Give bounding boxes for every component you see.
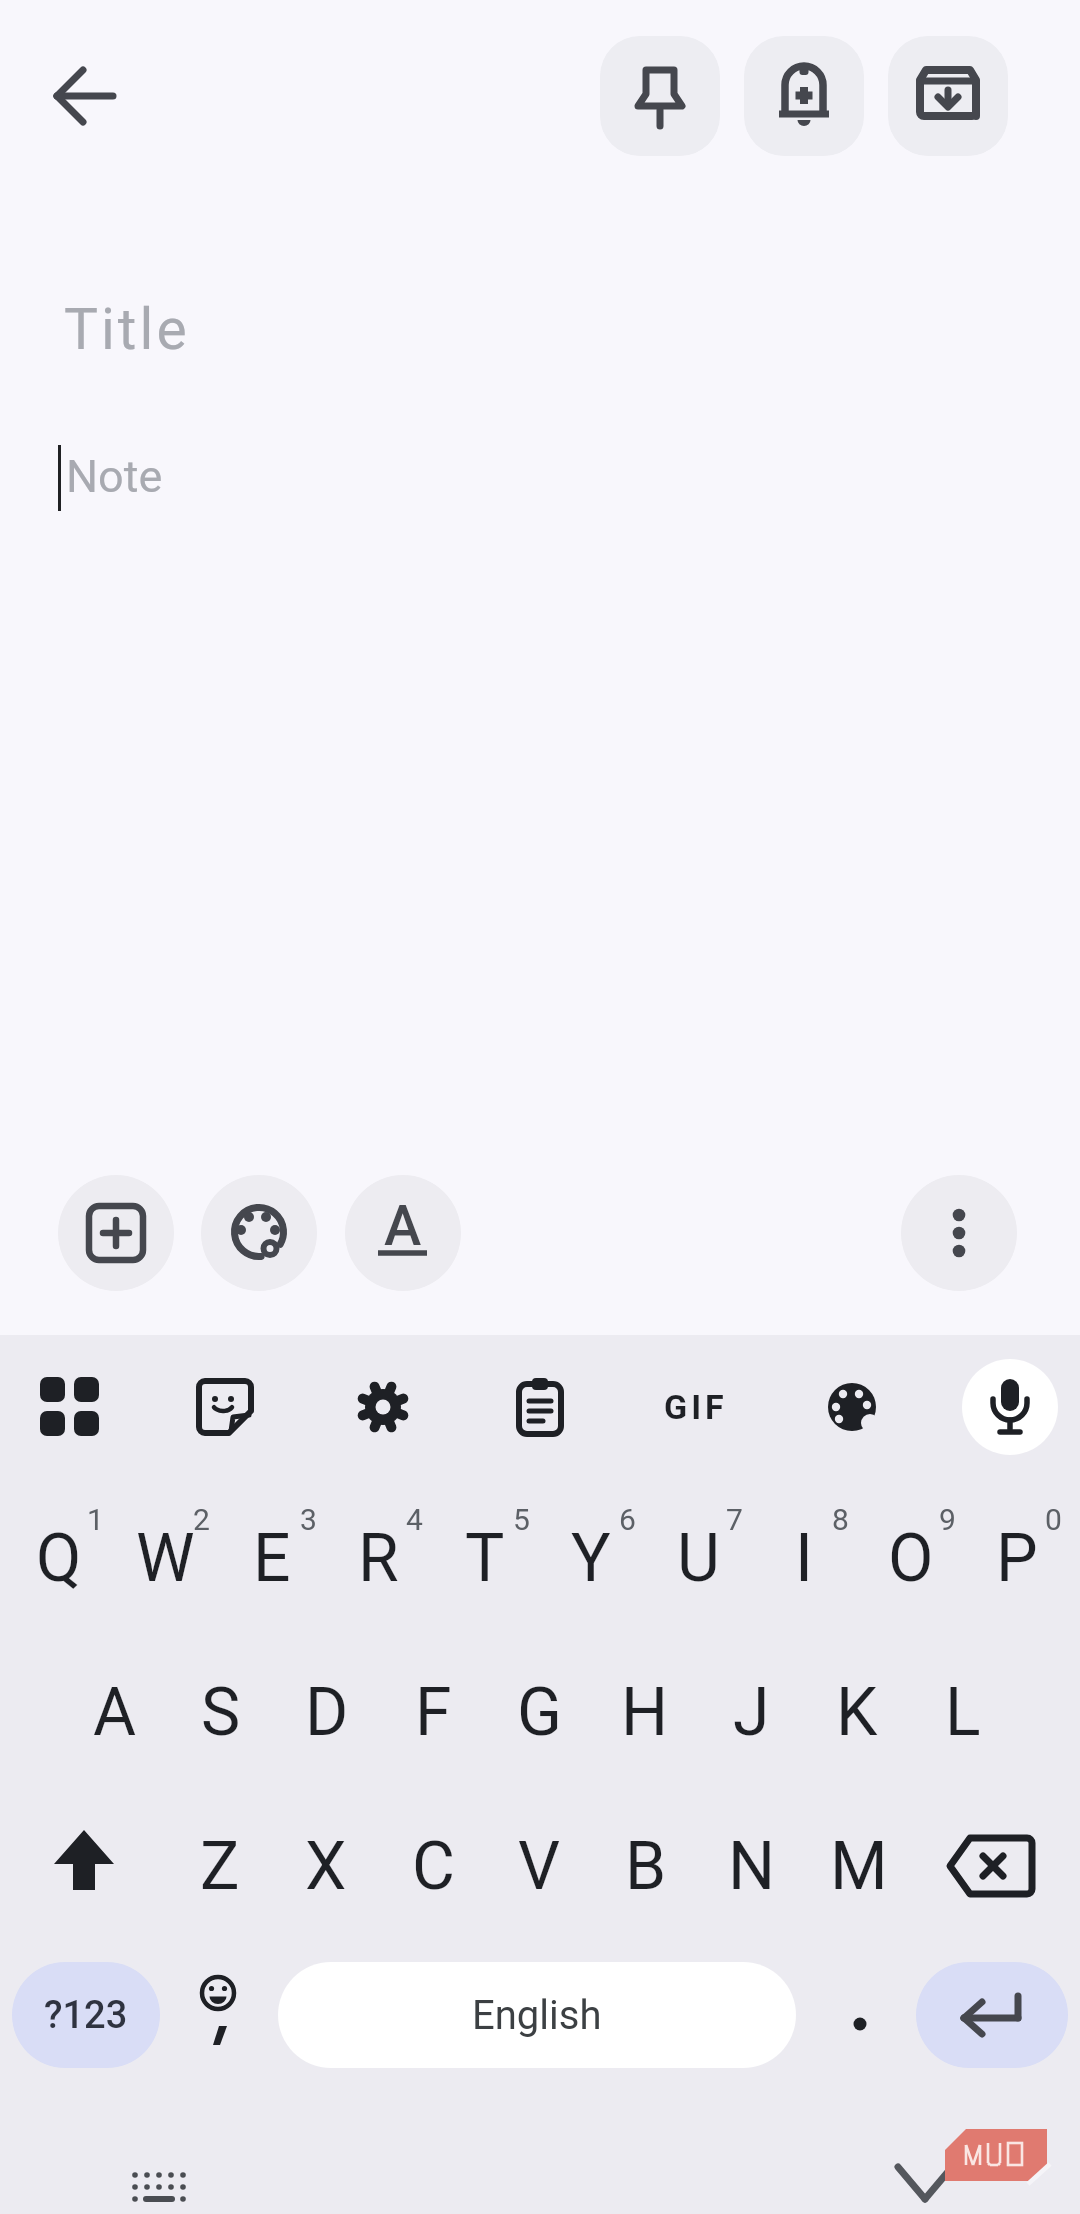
button[interactable] <box>177 1359 273 1455</box>
staticText: U <box>677 1520 720 1597</box>
staticText: J <box>733 1674 770 1751</box>
button[interactable] <box>22 1359 118 1455</box>
button[interactable]: F <box>379 1642 487 1782</box>
button[interactable] <box>37 48 133 144</box>
button[interactable] <box>916 1962 1068 2068</box>
staticText: T <box>465 1520 505 1597</box>
staticText: N <box>728 1828 776 1905</box>
staticText: 1 <box>87 1502 104 1537</box>
button[interactable]: K <box>803 1642 911 1782</box>
staticText: 9 <box>939 1502 956 1537</box>
button[interactable]: N <box>698 1796 806 1936</box>
button[interactable] <box>888 36 1008 156</box>
button[interactable] <box>600 36 720 156</box>
button[interactable]: A <box>345 1175 461 1291</box>
staticText: 8 <box>832 1502 849 1537</box>
staticText: 2 <box>193 1502 210 1537</box>
staticText: K <box>836 1674 878 1751</box>
staticText: H <box>621 1674 669 1751</box>
button[interactable]: A <box>61 1642 169 1782</box>
staticText: D <box>305 1674 349 1751</box>
button[interactable] <box>201 1175 317 1291</box>
staticText: L <box>945 1674 981 1751</box>
button[interactable]: GIF <box>648 1359 744 1455</box>
staticText: B <box>625 1828 667 1905</box>
button[interactable] <box>962 1359 1058 1455</box>
staticText: GIF <box>664 1387 728 1427</box>
button[interactable]: X <box>272 1796 380 1936</box>
staticText: 7 <box>726 1502 743 1537</box>
button[interactable]: E <box>218 1488 326 1628</box>
staticText: English <box>472 1992 602 2039</box>
button[interactable] <box>825 1962 895 2068</box>
button[interactable]: U <box>644 1488 752 1628</box>
staticText: Note <box>66 450 163 503</box>
button[interactable] <box>335 1359 431 1455</box>
button[interactable] <box>804 1359 900 1455</box>
button[interactable] <box>492 1359 588 1455</box>
staticText: Title <box>64 296 190 363</box>
button[interactable] <box>901 1175 1017 1291</box>
button[interactable]: R <box>324 1488 432 1628</box>
staticText: S <box>201 1674 241 1751</box>
button[interactable]: Y <box>537 1488 645 1628</box>
staticText: I <box>795 1520 813 1597</box>
button[interactable] <box>744 36 864 156</box>
staticText: C <box>412 1828 455 1905</box>
button[interactable] <box>173 1962 263 2068</box>
button[interactable]: ?123 <box>12 1962 160 2068</box>
button[interactable]: G <box>485 1642 593 1782</box>
button[interactable]: L <box>909 1642 1017 1782</box>
staticText: W <box>136 1520 195 1597</box>
staticText: Q <box>36 1520 82 1597</box>
button[interactable]: S <box>167 1642 275 1782</box>
button[interactable]: P <box>963 1488 1071 1628</box>
button[interactable]: M <box>805 1796 913 1936</box>
button[interactable] <box>930 1812 1050 1920</box>
staticText: V <box>518 1828 561 1905</box>
button[interactable]: V <box>485 1796 593 1936</box>
staticText: X <box>305 1828 347 1905</box>
staticText: A <box>384 1193 422 1257</box>
staticText: E <box>253 1520 291 1597</box>
staticText: 6 <box>619 1502 636 1537</box>
staticText: A <box>93 1674 137 1751</box>
staticText: 4 <box>406 1502 423 1537</box>
button[interactable]: W <box>111 1488 219 1628</box>
button[interactable]: C <box>379 1796 487 1936</box>
button[interactable] <box>30 1812 138 1920</box>
staticText: P <box>996 1520 1038 1597</box>
staticText: 3 <box>300 1502 317 1537</box>
button[interactable]: J <box>697 1642 805 1782</box>
staticText: Z <box>200 1828 240 1905</box>
button[interactable]: D <box>273 1642 381 1782</box>
staticText: 0 <box>1045 1502 1062 1537</box>
button[interactable]: English <box>278 1962 796 2068</box>
staticText: M <box>830 1828 888 1905</box>
staticText: 5 <box>513 1502 530 1537</box>
staticText: R <box>358 1520 399 1597</box>
staticText: ?123 <box>44 1993 128 2038</box>
staticText: G <box>517 1674 562 1751</box>
button[interactable]: T <box>431 1488 539 1628</box>
staticText: O <box>888 1520 934 1597</box>
button[interactable]: Q <box>5 1488 113 1628</box>
button[interactable]: H <box>591 1642 699 1782</box>
button[interactable]: B <box>592 1796 700 1936</box>
button[interactable]: I <box>750 1488 858 1628</box>
staticText: Y <box>571 1520 611 1597</box>
button[interactable]: Z <box>166 1796 274 1936</box>
staticText: F <box>415 1674 452 1751</box>
button[interactable] <box>58 1175 174 1291</box>
button[interactable]: O <box>857 1488 965 1628</box>
